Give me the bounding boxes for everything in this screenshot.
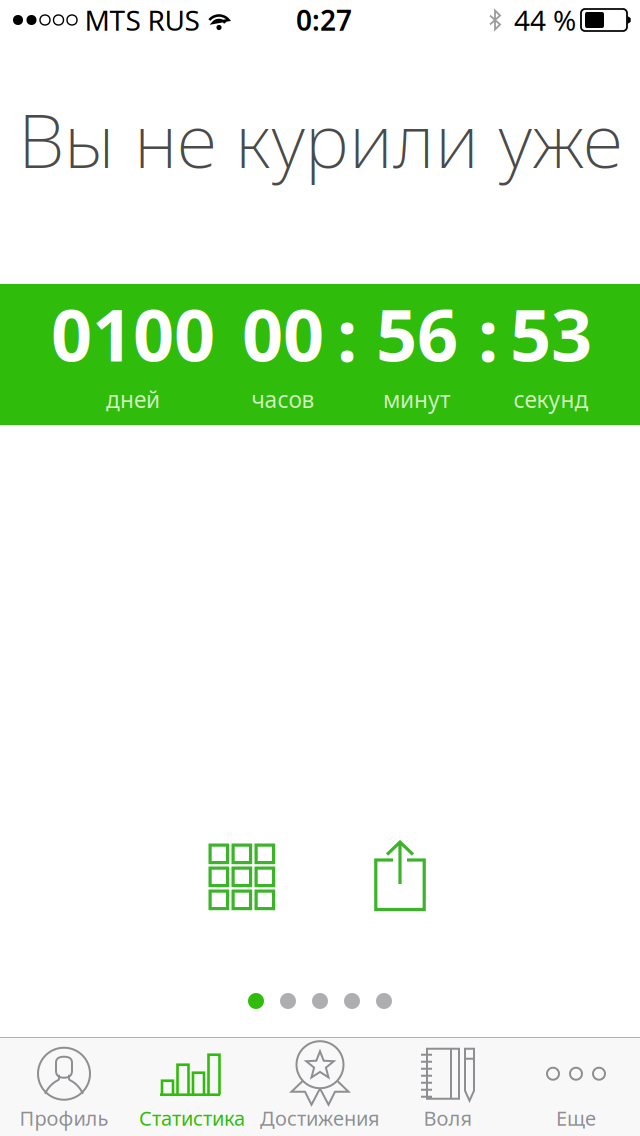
staticText: часов [251,384,314,414]
staticText: Еще [556,1105,596,1131]
button[interactable]: Поделиться [352,828,448,924]
button[interactable]: Профиль [0,1038,128,1136]
staticText: секунд [513,384,588,414]
staticText: 0100 [51,286,215,381]
button[interactable]: Воля [384,1038,512,1136]
button[interactable]: Статистика по дням [192,827,288,923]
staticText: Профиль [19,1105,108,1131]
staticText: 00 [242,286,324,381]
button[interactable]: Еще [512,1038,640,1136]
button[interactable]: Достижения [256,1038,384,1136]
staticText: 0:27 [296,1,352,39]
staticText: минут [383,384,451,414]
staticText: Вы не курили уже [18,89,622,189]
staticText: дней [106,384,160,414]
staticText: 53 [510,286,592,381]
staticText: Статистика [139,1105,245,1131]
staticText: Достижения [260,1105,380,1131]
staticText: : [478,286,498,382]
staticText: 44 % [514,1,576,39]
staticText: MTS RUS [84,1,199,39]
staticText: : [337,286,357,382]
staticText: Воля [423,1105,472,1131]
button[interactable]: Статистика [128,1038,256,1136]
staticText: 56 [376,286,458,381]
